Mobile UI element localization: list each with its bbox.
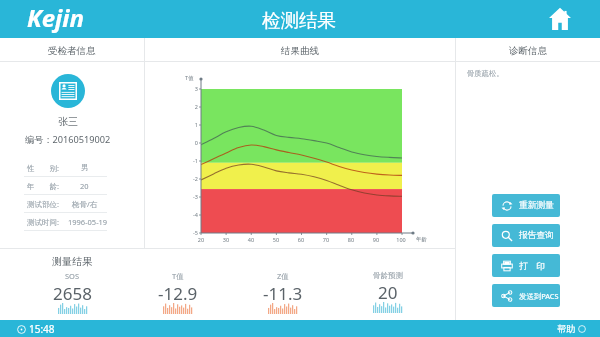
staticText: 80 xyxy=(344,236,358,243)
staticText: 2658 xyxy=(53,282,92,305)
staticText: 发送到PACS xyxy=(519,291,559,301)
staticText: 性 别: xyxy=(27,163,60,173)
staticText: Kejin xyxy=(27,1,84,34)
staticText: 男 xyxy=(81,163,89,172)
staticText: 3 xyxy=(186,85,198,92)
button[interactable]: 帮助 xyxy=(557,323,586,334)
staticText: 年龄 xyxy=(416,236,427,243)
staticText: 检测结果 xyxy=(262,9,336,32)
staticText: 年 龄: xyxy=(27,181,60,191)
staticText: 20 xyxy=(194,236,208,243)
staticText: 90 xyxy=(369,236,383,243)
staticText: 受检者信息 xyxy=(48,45,96,57)
staticText: 测试时间: xyxy=(27,217,60,227)
staticText: -12.9 xyxy=(158,282,198,305)
staticText: -1 xyxy=(186,157,198,164)
staticText: 20 xyxy=(378,281,398,304)
staticText: 桡骨/右 xyxy=(72,199,98,209)
staticText: 0 xyxy=(186,139,198,146)
staticText: T值 xyxy=(172,271,184,281)
staticText: 测试部位: xyxy=(27,199,60,209)
staticText: 张三 xyxy=(58,115,78,128)
staticText: 15:48 xyxy=(29,322,55,336)
button[interactable]: 发送到PACS xyxy=(492,284,560,307)
staticText: -11.3 xyxy=(263,282,303,305)
staticText: 70 xyxy=(319,236,333,243)
staticText: 30 xyxy=(219,236,233,243)
staticText: 50 xyxy=(269,236,283,243)
button[interactable]: 报告查询 xyxy=(492,224,560,247)
staticText: 帮助 xyxy=(557,323,575,334)
staticText: 测量结果 xyxy=(52,255,92,268)
staticText: -3 xyxy=(186,193,198,200)
staticText: 骨质疏松。 xyxy=(467,69,504,78)
staticText: 报告查询 xyxy=(519,230,554,241)
staticText: Z值 xyxy=(277,271,289,281)
staticText: -2 xyxy=(186,175,198,182)
staticText: -5 xyxy=(186,229,198,236)
staticText: 诊断信息 xyxy=(509,45,547,57)
staticText: 重新测量 xyxy=(519,200,554,211)
staticText: 编号：20160519002 xyxy=(25,133,111,146)
staticText: 打 印 xyxy=(519,260,546,272)
staticText: 40 xyxy=(244,236,258,243)
staticText: T值 xyxy=(185,74,194,82)
staticText: 20 xyxy=(80,181,89,191)
staticText: 100 xyxy=(394,236,408,243)
staticText: 60 xyxy=(294,236,308,243)
button[interactable]: Home xyxy=(549,7,571,30)
staticText: 2 xyxy=(186,103,198,110)
button[interactable]: 打 印 xyxy=(492,254,560,277)
staticText: 骨龄预测 xyxy=(373,271,403,280)
staticText: 结果曲线 xyxy=(281,45,319,57)
staticText: -4 xyxy=(186,211,198,218)
button[interactable]: 重新测量 xyxy=(492,194,560,217)
staticText: 1996-05-19 xyxy=(68,217,108,227)
staticText: 1 xyxy=(186,121,198,128)
staticText: SOS xyxy=(65,271,80,281)
